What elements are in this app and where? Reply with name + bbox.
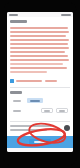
button[interactable]: Option xyxy=(41,108,53,113)
button[interactable]: Selected option xyxy=(27,98,43,103)
button[interactable] xyxy=(10,78,70,84)
button[interactable]: Submit xyxy=(29,139,51,145)
button[interactable]: Option xyxy=(56,108,68,113)
button[interactable]: Profile xyxy=(64,125,70,131)
